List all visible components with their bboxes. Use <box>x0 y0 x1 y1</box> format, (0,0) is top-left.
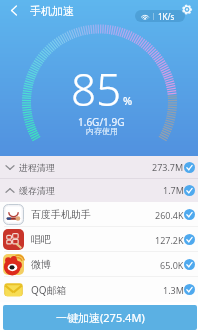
staticText: 缓存清理 <box>19 185 55 196</box>
button[interactable]: 微博 <box>0 252 198 277</box>
staticText: 1.7M <box>163 184 184 196</box>
staticText: 1.6G/1.9G <box>78 115 125 129</box>
staticText: 1.3M <box>163 284 184 296</box>
staticText: 手机加速 <box>30 4 74 18</box>
staticText: 273.7M <box>152 161 184 173</box>
staticText: % <box>123 93 133 108</box>
staticText: 百度手机助手 <box>31 208 91 221</box>
staticText: 65.0K <box>160 259 184 271</box>
button[interactable]: 百度手机助手 <box>0 202 198 227</box>
staticText: 一键加速(275.4M) <box>56 310 145 325</box>
button[interactable]: Settings <box>179 1 195 17</box>
staticText: 唱吧 <box>31 233 51 246</box>
staticText: 内存使用 <box>86 126 118 136</box>
button[interactable]: QQ邮箱 <box>0 277 198 302</box>
button[interactable]: 1K/s <box>135 10 185 22</box>
staticText: 1K/s <box>158 11 175 22</box>
staticText: 进程清理 <box>19 162 55 173</box>
staticText: 127.2K <box>155 234 184 246</box>
staticText: QQ邮箱 <box>31 283 67 297</box>
staticText: 260.4K <box>155 209 184 221</box>
button[interactable]: 唱吧 <box>0 227 198 252</box>
staticText: 微博 <box>31 258 51 271</box>
button[interactable]: 进程清理 <box>0 156 198 178</box>
staticText: 85 <box>71 59 122 119</box>
button[interactable]: 一键加速(275.4M) <box>3 305 197 330</box>
button[interactable]: 缓存清理 <box>0 178 198 202</box>
button[interactable]: Back <box>6 2 22 18</box>
